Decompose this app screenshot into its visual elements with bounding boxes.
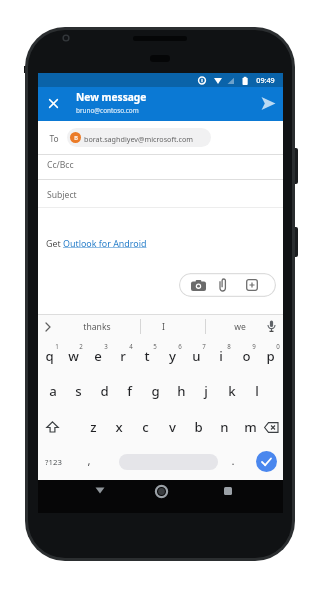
button[interactable]: d	[92, 378, 116, 404]
button[interactable]	[218, 278, 228, 292]
staticText: v	[169, 418, 176, 436]
button[interactable]: e	[86, 343, 110, 369]
button[interactable]: t	[135, 343, 159, 369]
staticText: x	[115, 418, 123, 436]
button[interactable]: p	[258, 343, 282, 369]
staticText: s	[75, 382, 82, 400]
button[interactable]: a	[41, 378, 65, 404]
staticText: bruno@contoso.com	[76, 106, 139, 115]
button[interactable]: f	[117, 378, 141, 404]
staticText: To	[49, 133, 59, 144]
button[interactable]: u	[184, 343, 208, 369]
staticText: g	[151, 382, 160, 400]
button[interactable]	[46, 421, 59, 433]
button[interactable]	[43, 321, 53, 333]
staticText: .	[231, 453, 235, 469]
button[interactable]: thanks	[62, 318, 132, 336]
button[interactable]: h	[169, 378, 193, 404]
staticText: 9	[252, 342, 256, 350]
button[interactable]	[264, 422, 279, 433]
staticText: borat.saghdiyev@microsoft.com	[84, 134, 193, 144]
staticText: ?123	[45, 457, 62, 468]
button[interactable]: q	[37, 343, 61, 369]
staticText: B	[74, 134, 78, 141]
staticText: 2	[79, 342, 83, 350]
button[interactable]: w	[61, 343, 85, 369]
button[interactable]: r	[111, 343, 135, 369]
button[interactable]	[95, 487, 105, 494]
staticText: we	[234, 321, 246, 333]
staticText: 3	[104, 342, 108, 350]
button[interactable]: I	[131, 318, 196, 336]
staticText: 0	[276, 342, 280, 350]
staticText: 09:49	[256, 75, 275, 85]
button[interactable]: l	[245, 378, 269, 404]
staticText: l	[255, 382, 259, 400]
button[interactable]	[191, 280, 206, 291]
staticText: d	[100, 382, 109, 400]
button[interactable]: c	[133, 414, 157, 440]
staticText: 7	[202, 342, 206, 350]
staticText: thanks	[83, 321, 111, 333]
button[interactable]	[224, 487, 232, 495]
staticText: t	[144, 347, 150, 365]
button[interactable]	[246, 279, 258, 291]
button[interactable]	[45, 95, 62, 112]
button[interactable]: o	[234, 343, 258, 369]
staticText: 8	[227, 342, 231, 350]
button[interactable]: m	[238, 414, 262, 440]
button[interactable]: we	[210, 318, 270, 336]
button[interactable]	[119, 454, 218, 470]
staticText: y	[169, 347, 176, 365]
button[interactable]: i	[209, 343, 233, 369]
staticText: n	[220, 418, 229, 436]
button[interactable]: b	[186, 414, 210, 440]
staticText: e	[94, 347, 102, 365]
staticText: p	[266, 347, 275, 365]
button[interactable]: y	[160, 343, 184, 369]
staticText: f	[127, 382, 132, 400]
button[interactable]: B	[67, 128, 211, 147]
staticText: a	[49, 382, 57, 400]
staticText: z	[90, 418, 97, 436]
staticText: Cc/Bcc	[47, 159, 74, 171]
staticText: k	[228, 382, 236, 400]
button[interactable]	[38, 179, 283, 207]
button[interactable]: v	[160, 414, 184, 440]
staticText: Get Outlook for Android	[46, 237, 147, 249]
button[interactable]	[256, 451, 277, 472]
button[interactable]	[261, 97, 276, 110]
staticText: h	[177, 382, 186, 400]
button[interactable]: n	[212, 414, 236, 440]
staticText: 1	[55, 342, 59, 350]
button[interactable]	[38, 154, 283, 179]
staticText: 6	[178, 342, 182, 350]
staticText: 5	[153, 342, 157, 350]
staticText: i	[219, 347, 223, 365]
button[interactable]: z	[81, 414, 105, 440]
staticText: New message	[76, 90, 147, 104]
button[interactable]: Get Outlook for Android	[46, 237, 147, 249]
staticText: w	[68, 347, 79, 365]
button[interactable]: s	[66, 378, 90, 404]
staticText: q	[45, 347, 54, 365]
button[interactable]: k	[220, 378, 244, 404]
button[interactable]	[267, 320, 276, 333]
staticText: 4	[129, 342, 133, 350]
staticText: c	[142, 418, 149, 436]
button[interactable]: g	[143, 378, 167, 404]
staticText: b	[194, 418, 203, 436]
staticText: I	[162, 321, 165, 333]
button[interactable]: j	[194, 378, 218, 404]
staticText: ,	[87, 453, 91, 469]
staticText: m	[244, 418, 257, 436]
staticText: r	[120, 347, 126, 365]
staticText: o	[242, 347, 251, 365]
staticText: Subject	[47, 189, 77, 201]
button[interactable]: x	[107, 414, 131, 440]
staticText: j	[204, 382, 208, 400]
button[interactable]	[155, 485, 168, 498]
staticText: u	[192, 347, 201, 365]
